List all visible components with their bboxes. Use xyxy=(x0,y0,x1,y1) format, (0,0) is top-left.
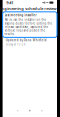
staticText: Today at 10:24 xyxy=(6,43,26,46)
staticText: We re-ran the installer on the staging c… xyxy=(5,18,53,36)
staticText: Last meeting installer xyxy=(5,13,37,17)
staticText: 9:41 xyxy=(6,0,13,5)
staticText: Updated by Dana Whitfield xyxy=(6,39,47,42)
button[interactable]: Last meeting installer xyxy=(3,12,57,37)
staticText: Engineering schedule review xyxy=(0,6,56,11)
button[interactable]: Engineering schedule review xyxy=(0,6,56,11)
